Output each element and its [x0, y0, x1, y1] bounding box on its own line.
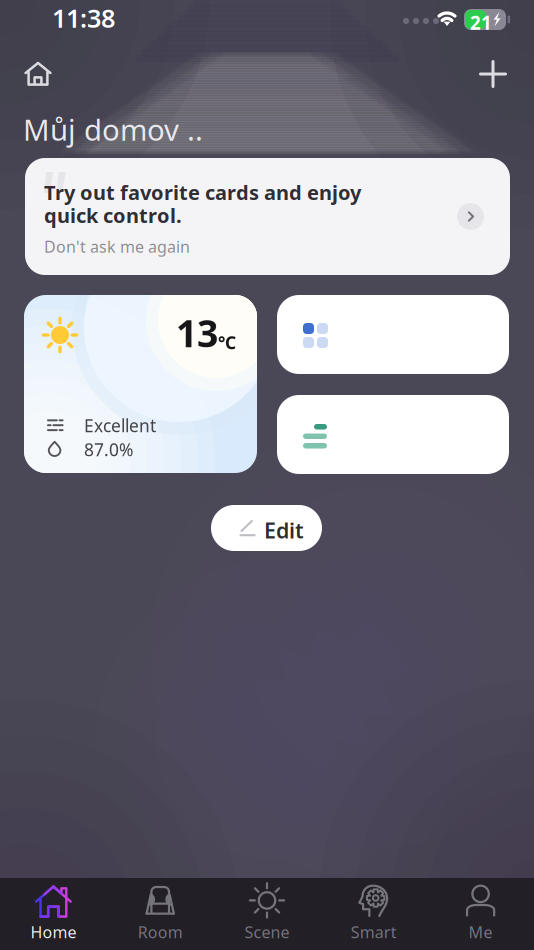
staticText: Me: [469, 921, 493, 943]
button[interactable]: Room: [107, 878, 214, 950]
button[interactable]: Edit: [211, 505, 322, 551]
staticText: 21: [470, 10, 492, 35]
button[interactable]: Add: [467, 48, 519, 100]
staticText: Excellent: [84, 414, 156, 437]
button[interactable]: Me: [427, 878, 534, 950]
staticText: 11:38: [52, 1, 115, 35]
staticText: Try out favorite cards and enjoy: [44, 179, 361, 206]
staticText: quick control.: [44, 202, 182, 229]
staticText: Room: [138, 921, 183, 943]
button[interactable]: Smart: [320, 878, 427, 950]
staticText: °C: [218, 331, 236, 354]
staticText: Home: [30, 921, 76, 943]
staticText: Smart: [351, 921, 397, 943]
staticText: 87.0%: [84, 438, 133, 461]
staticText: Don't ask me again: [44, 236, 190, 257]
button[interactable]: Scenes: [277, 395, 509, 474]
staticText: 13: [176, 308, 218, 358]
button[interactable]: Weather, 13 degrees, air quality excelle…: [24, 295, 257, 473]
staticText: Scene: [244, 921, 289, 943]
staticText: Edit: [264, 516, 304, 544]
button[interactable]: Devices: [277, 295, 509, 374]
button[interactable]: Try out favorite cards and enjoy: [25, 158, 510, 275]
button[interactable]: Scene: [214, 878, 320, 950]
button[interactable]: Home: [12, 48, 64, 100]
button[interactable]: Home: [0, 878, 107, 950]
staticText: Můj domov ..: [23, 110, 203, 149]
